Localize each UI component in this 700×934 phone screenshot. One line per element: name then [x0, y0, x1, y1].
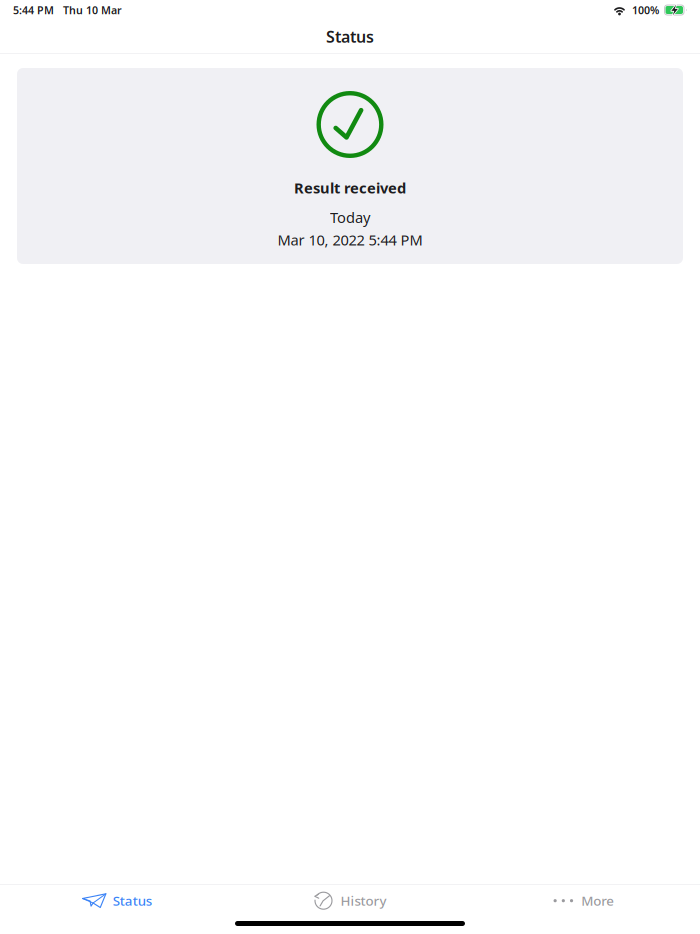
staticText: Mar 10, 2022 5:44 PM	[277, 230, 422, 249]
staticText: More	[581, 892, 614, 909]
button[interactable]: History	[233, 885, 467, 917]
staticText: Today	[330, 207, 370, 227]
staticText: 5:44 PM	[13, 3, 54, 17]
button[interactable]: More	[467, 885, 700, 917]
staticText: Thu 10 Mar	[63, 3, 122, 17]
button[interactable]: Status	[0, 885, 233, 917]
staticText: History	[340, 892, 386, 909]
staticText: Result received	[294, 178, 406, 197]
staticText: 100%	[632, 3, 659, 17]
staticText: Status	[113, 892, 152, 909]
staticText: Status	[326, 26, 374, 47]
